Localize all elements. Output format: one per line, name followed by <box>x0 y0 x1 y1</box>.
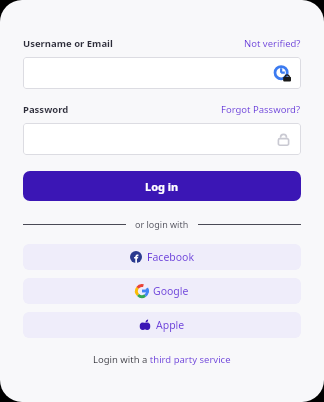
staticText: Forgot Password? <box>221 103 301 116</box>
staticText: Login with a third party service <box>93 353 231 366</box>
button[interactable]: Saved password <box>23 57 301 89</box>
button[interactable]: Forgot Password? <box>221 103 301 116</box>
button[interactable]: Facebook <box>23 244 301 270</box>
staticText: Username or Email <box>23 37 113 50</box>
button[interactable]: Google <box>23 278 301 304</box>
staticText: or login with <box>135 218 189 230</box>
button[interactable]: Show password <box>23 123 301 155</box>
button[interactable]: Log in <box>23 171 301 201</box>
button[interactable]: Apple <box>23 312 301 338</box>
button[interactable]: Not verified? <box>244 37 301 50</box>
staticText: Password <box>23 103 69 116</box>
staticText: Google <box>153 284 189 298</box>
staticText: Facebook <box>147 250 195 264</box>
staticText: Log in <box>145 179 179 194</box>
button[interactable]: Show password <box>276 132 291 147</box>
staticText: Apple <box>156 318 185 332</box>
button[interactable]: Login with a third party service <box>23 353 301 366</box>
button[interactable]: Saved password <box>274 65 291 82</box>
staticText: Not verified? <box>244 37 301 50</box>
